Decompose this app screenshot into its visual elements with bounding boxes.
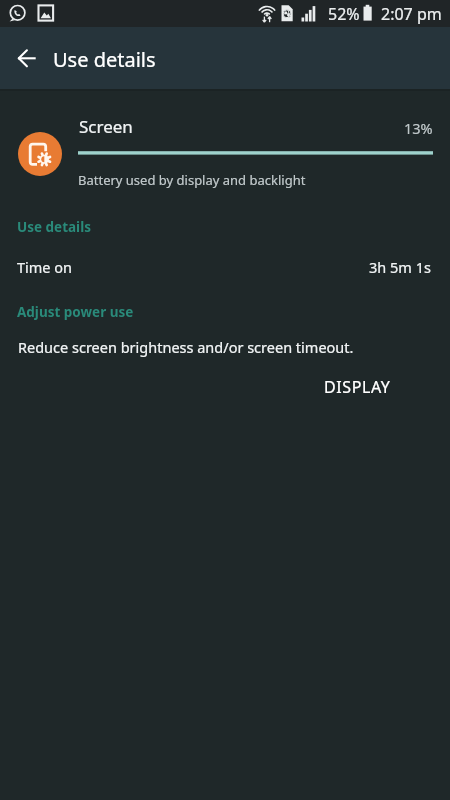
staticText: 52% [328, 3, 360, 25]
staticText: 3h 5m 1s [369, 257, 431, 277]
button[interactable] [0, 100, 450, 200]
button[interactable]: Use details [0, 208, 450, 238]
staticText: DISPLAY [324, 376, 391, 398]
button[interactable]: Back [0, 27, 53, 89]
button[interactable]: DISPLAY [310, 366, 405, 408]
staticText: Time on [17, 257, 73, 277]
staticText: Screen [79, 115, 133, 138]
staticText: Battery used by display and backlight [78, 171, 306, 189]
staticText: Adjust power use [17, 303, 134, 321]
staticText: 13% [404, 118, 433, 138]
staticText: Reduce screen brightness and/or screen t… [18, 337, 354, 357]
button[interactable]: Time on [0, 249, 450, 281]
button[interactable]: Adjust power use [0, 293, 450, 323]
staticText: Use details [53, 46, 156, 73]
staticText: 2:07 pm [381, 3, 442, 25]
staticText: Use details [17, 218, 91, 236]
